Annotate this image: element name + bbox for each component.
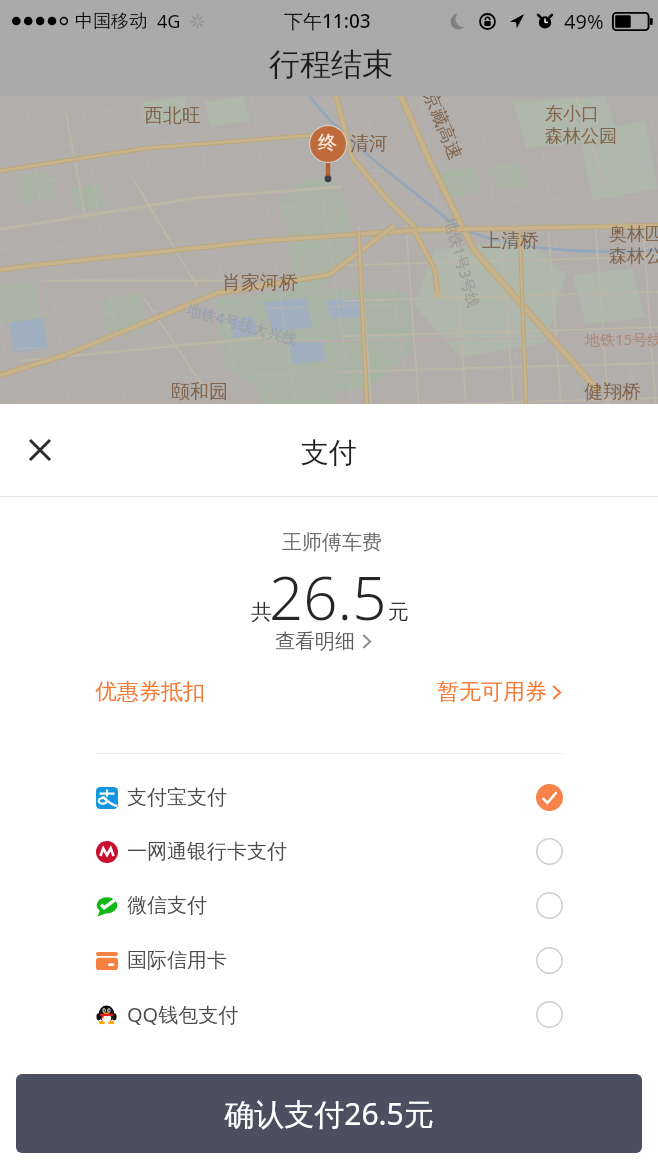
staticText: 查看明细 — [275, 629, 355, 654]
staticText: 西北旺 — [144, 104, 201, 128]
staticText: 一网通银行卡支付 — [127, 839, 287, 864]
staticText: 中国移动 — [75, 10, 147, 33]
staticText: 支付宝支付 — [127, 785, 227, 810]
staticText: 东小口 森林公园 — [545, 103, 617, 148]
button[interactable]: 查看明细 — [275, 624, 373, 658]
button[interactable]: 微信支付 — [0, 878, 658, 932]
staticText: 肖家河桥 — [222, 271, 298, 295]
staticText: QQ钱包支付 — [127, 1001, 239, 1028]
staticText: 清河 — [350, 132, 388, 156]
staticText: 奥林匹 森林公 — [609, 223, 658, 268]
staticText: 京藏高速 — [418, 96, 467, 163]
staticText: 终 — [318, 131, 337, 155]
button[interactable]: 确认支付26.5元 — [16, 1074, 642, 1153]
staticText: 下午11:03 — [284, 8, 371, 34]
button[interactable]: 支付宝支付 — [0, 770, 658, 824]
staticText: 健翔桥 — [584, 380, 641, 404]
button[interactable]: 一网通银行卡支付 — [0, 824, 658, 878]
staticText: 确认支付26.5元 — [224, 1093, 434, 1134]
staticText: 上清桥 — [482, 229, 539, 253]
staticText: 优惠券抵扣 — [95, 678, 205, 706]
staticText: 颐和园 — [171, 380, 228, 404]
button[interactable]: QQ钱包支付 — [0, 987, 658, 1041]
staticText: 国际信用卡 — [127, 948, 227, 973]
staticText: 地铁15号线 — [585, 329, 658, 349]
staticText: 王师傅车费 — [282, 530, 382, 555]
staticText: 49% — [564, 8, 604, 35]
staticText: 26.5 — [269, 556, 387, 638]
button[interactable]: Close — [18, 428, 62, 472]
staticText: 行程结束 — [269, 45, 393, 84]
button[interactable]: 国际信用卡 — [0, 933, 658, 987]
staticText: 元 — [388, 599, 409, 625]
staticText: 4G — [157, 9, 181, 34]
staticText: 地铁4号线大兴线 — [185, 298, 300, 349]
staticText: 地铁1号3号线 — [441, 215, 484, 310]
staticText: 共 — [251, 599, 272, 625]
button[interactable]: 优惠券抵扣 — [0, 670, 658, 714]
staticText: 暂无可用券 — [437, 678, 547, 706]
staticText: 微信支付 — [127, 893, 207, 918]
staticText: 支付 — [301, 435, 357, 470]
